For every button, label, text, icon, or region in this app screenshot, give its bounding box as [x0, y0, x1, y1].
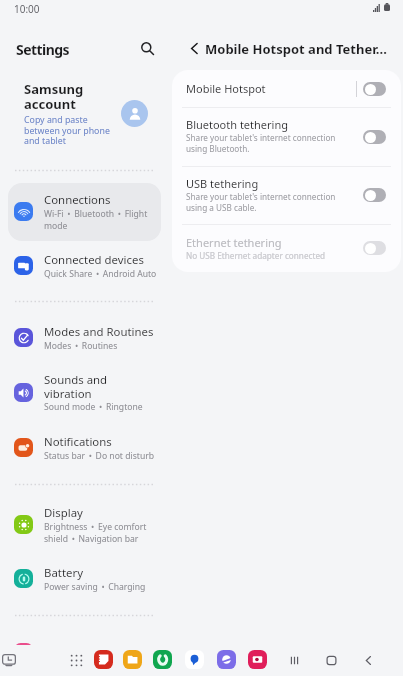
button[interactable]: Samsung account	[0, 76, 168, 148]
button[interactable]: camera	[248, 650, 267, 669]
button[interactable]: Toggle Mobile Hotspot	[363, 82, 386, 96]
staticText: shield • Navigation bar	[44, 533, 139, 545]
button[interactable]: files	[123, 650, 142, 669]
button[interactable]: notes	[94, 650, 113, 669]
button[interactable]: All apps	[67, 651, 85, 669]
staticText: Notifications	[44, 434, 112, 450]
staticText: Samsung account	[24, 80, 112, 113]
staticText: Share your tablet's internet connection	[186, 191, 336, 202]
button[interactable]: Back	[180, 34, 208, 62]
staticText: Display	[44, 505, 83, 521]
staticText: Connections	[44, 192, 111, 208]
staticText: Wallpaper and style	[44, 644, 150, 660]
staticText: Sound mode • Ringtone	[44, 401, 143, 413]
staticText: 10:00	[14, 2, 40, 16]
button[interactable]	[4, 626, 161, 676]
staticText: Ethernet tethering	[186, 235, 282, 250]
staticText: Sounds and vibration	[44, 372, 108, 401]
button[interactable]	[172, 166, 401, 224]
button[interactable]	[172, 224, 401, 272]
button[interactable]: Recents	[284, 650, 304, 670]
staticText: Bluetooth tethering	[186, 117, 288, 132]
staticText: Modes • Routines	[44, 340, 118, 352]
button[interactable]: Home	[321, 650, 341, 670]
button[interactable]	[172, 107, 401, 166]
button[interactable]: messages	[185, 650, 204, 669]
button[interactable]: internet	[217, 650, 236, 669]
staticText: Power saving • Charging	[44, 581, 146, 593]
staticText: Wi-Fi • Bluetooth • Flight	[44, 208, 148, 220]
button[interactable]: Back	[358, 650, 378, 670]
button[interactable]: Samsung DeX	[0, 650, 19, 669]
button[interactable]	[4, 552, 161, 604]
staticText: Connected devices	[44, 252, 144, 268]
staticText: Mobile Hotspot and Tether...	[205, 40, 387, 58]
button[interactable]: Toggle Bluetooth tethering	[363, 130, 386, 144]
staticText: Brightness • Eye comfort	[44, 521, 147, 533]
staticText: using Bluetooth.	[186, 143, 250, 154]
button[interactable]: Toggle USB tethering	[363, 188, 386, 202]
button[interactable]	[4, 421, 161, 473]
staticText: No USB Ethernet adapter connected	[186, 250, 326, 261]
button[interactable]: Toggle Ethernet tethering	[363, 241, 386, 255]
button[interactable]	[4, 311, 161, 363]
staticText: Modes and Routines	[44, 324, 154, 340]
staticText: Settings	[16, 40, 69, 59]
staticText: Status bar • Do not disturb	[44, 450, 155, 462]
button[interactable]: Search	[133, 34, 161, 62]
staticText: USB tethering	[186, 176, 259, 191]
button[interactable]	[4, 239, 161, 291]
button[interactable]: phone	[153, 650, 172, 669]
button[interactable]	[4, 366, 161, 418]
button[interactable]	[4, 498, 161, 550]
staticText: Mobile Hotspot	[186, 81, 266, 96]
button[interactable]	[4, 185, 161, 237]
staticText: using a USB cable.	[186, 202, 257, 213]
button[interactable]	[172, 70, 401, 107]
staticText: mode	[44, 220, 68, 232]
staticText: Quick Share • Android Auto	[44, 268, 157, 280]
staticText: Battery	[44, 565, 83, 581]
staticText: Share your tablet's internet connection	[186, 132, 336, 143]
staticText: Copy and paste between your phone and ta…	[24, 114, 112, 147]
